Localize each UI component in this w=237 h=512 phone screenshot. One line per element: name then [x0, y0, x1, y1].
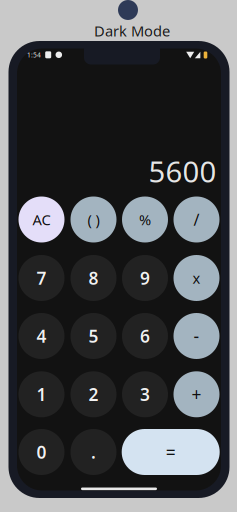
button[interactable]: 4 [18, 313, 64, 359]
staticText: 6 [140, 324, 150, 347]
staticText: 7 [36, 266, 46, 289]
button[interactable]: . [70, 429, 116, 475]
staticText: Dark Mode [94, 21, 170, 41]
staticText: / [193, 209, 199, 230]
staticText: 5 [88, 324, 98, 347]
staticText: x [192, 268, 200, 288]
button[interactable]: ( ) [70, 196, 116, 242]
staticText: 0 [36, 440, 46, 463]
staticText: % [139, 210, 151, 229]
staticText: 4 [36, 324, 46, 347]
button[interactable]: - [173, 313, 219, 359]
button[interactable]: AC [18, 196, 64, 242]
button[interactable]: 7 [18, 255, 64, 301]
staticText: 2 [88, 383, 98, 406]
staticText: + [191, 383, 201, 406]
staticText: 3 [140, 383, 150, 406]
button[interactable]: / [173, 196, 219, 242]
button[interactable]: 9 [122, 255, 168, 301]
button[interactable]: 0 [18, 429, 64, 475]
button[interactable]: + [173, 371, 219, 417]
staticText: - [193, 324, 199, 347]
button[interactable]: 1 [18, 371, 64, 417]
button[interactable]: 6 [122, 313, 168, 359]
button[interactable]: % [122, 196, 168, 242]
staticText: 9 [140, 266, 150, 289]
staticText: ( ) [87, 210, 99, 229]
button[interactable]: 5 [70, 313, 116, 359]
staticText: . [91, 440, 96, 463]
staticText: AC [32, 210, 50, 229]
button[interactable]: x [173, 255, 219, 301]
button[interactable]: 8 [70, 255, 116, 301]
button[interactable]: 3 [122, 371, 168, 417]
staticText: = [166, 440, 176, 463]
staticText: 1 [36, 383, 46, 406]
staticText: 8 [88, 266, 98, 289]
staticText: 1:54 [27, 51, 41, 59]
button[interactable]: = [122, 429, 220, 475]
staticText: 5600 [148, 151, 216, 190]
button[interactable]: 2 [70, 371, 116, 417]
